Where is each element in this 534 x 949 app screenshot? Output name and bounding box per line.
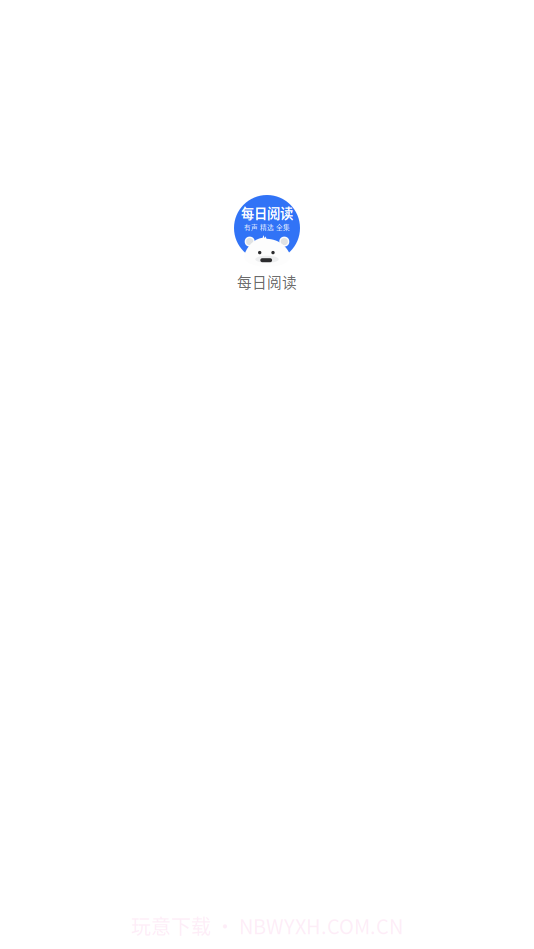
staticText: 每日阅读 <box>241 203 293 222</box>
staticText: 玩意下载 · NBWYXH.COM.CN <box>131 911 403 940</box>
staticText: 有声 精选 全集 <box>244 222 290 232</box>
staticText: 每日阅读 <box>237 271 297 292</box>
